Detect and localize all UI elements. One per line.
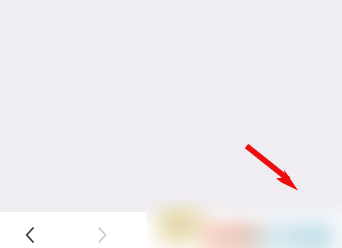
button[interactable]: Next page	[54, 212, 127, 248]
button[interactable]: Previous page	[0, 212, 54, 248]
